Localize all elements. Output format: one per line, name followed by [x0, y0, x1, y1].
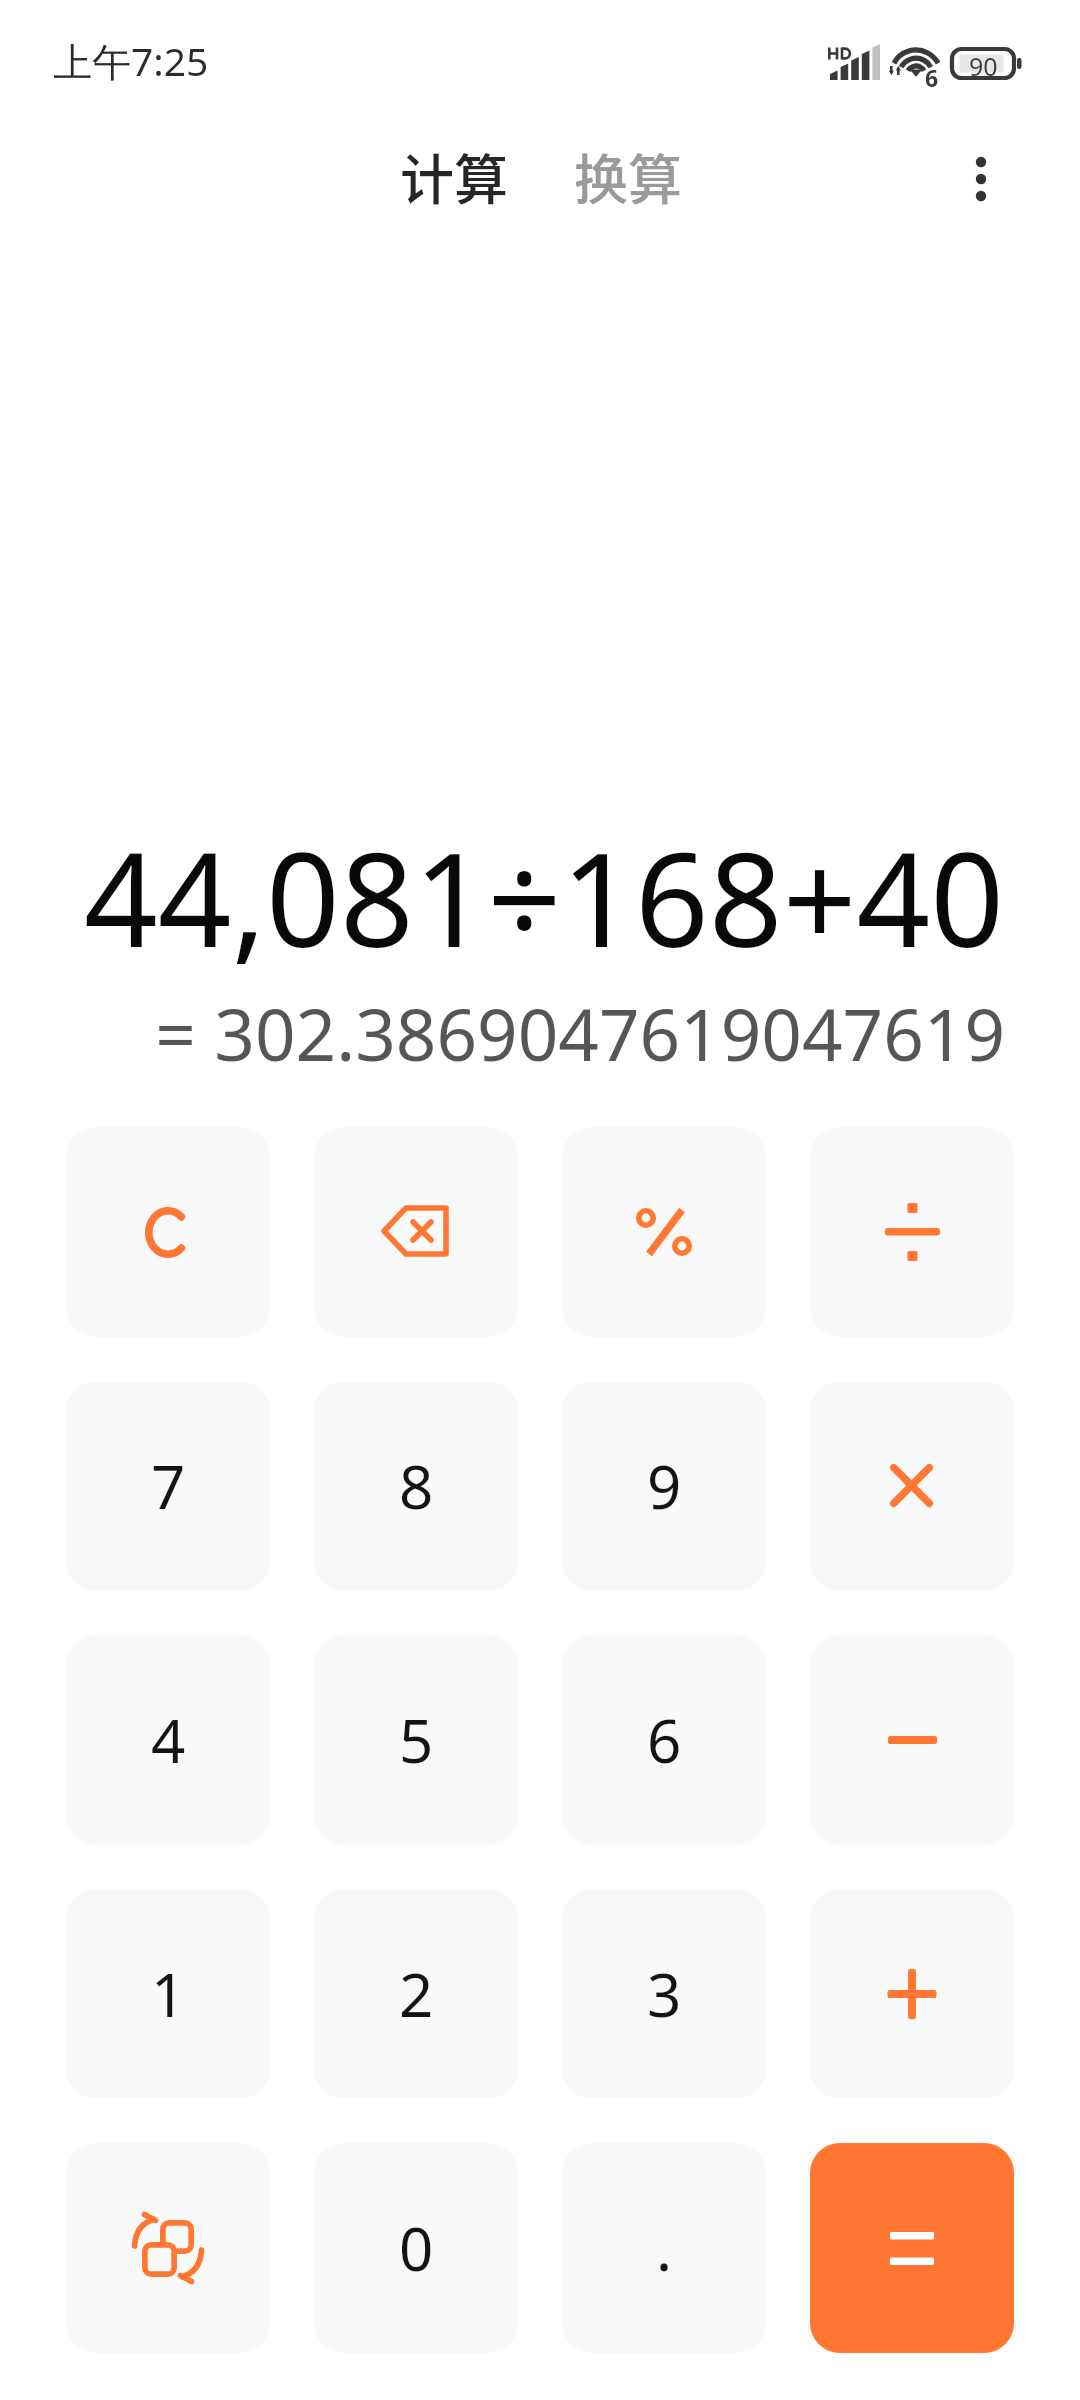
button[interactable]: 8: [314, 1381, 518, 1591]
staticText: 4: [151, 1699, 186, 1781]
button[interactable]: Clear: [66, 1127, 270, 1337]
staticText: = 302.3869047619047619: [0, 985, 1005, 1082]
staticText: 6: [925, 62, 939, 93]
button[interactable]: 6: [562, 1635, 766, 1845]
staticText: 7: [151, 1445, 186, 1527]
button[interactable]: 0: [314, 2143, 518, 2353]
staticText: 8: [399, 1445, 434, 1527]
staticText: 6: [647, 1699, 682, 1781]
button[interactable]: Divide: [810, 1127, 1014, 1337]
button[interactable]: .: [562, 2143, 766, 2353]
button[interactable]: Plus: [810, 1889, 1014, 2099]
staticText: 9: [647, 1445, 682, 1527]
button[interactable]: 5: [314, 1635, 518, 1845]
staticText: 2: [399, 1953, 434, 2035]
button[interactable]: 换算: [550, 113, 706, 239]
button[interactable]: 2: [314, 1889, 518, 2099]
staticText: 44,081÷168+40: [0, 809, 1004, 985]
staticText: 5: [399, 1699, 434, 1781]
button[interactable]: 计算: [376, 113, 532, 239]
staticText: 0: [399, 2207, 434, 2289]
button[interactable]: Multiply: [810, 1381, 1014, 1591]
staticText: .: [656, 2207, 673, 2289]
button[interactable]: 7: [66, 1381, 270, 1591]
button[interactable]: Backspace: [314, 1127, 518, 1337]
staticText: 3: [647, 1953, 682, 2035]
staticText: 1: [151, 1953, 186, 2035]
button[interactable]: Minus: [810, 1635, 1014, 1845]
button[interactable]: 9: [562, 1381, 766, 1591]
button[interactable]: 4: [66, 1635, 270, 1845]
staticText: 换算: [574, 137, 682, 215]
staticText: 上午7:25: [53, 34, 209, 87]
button[interactable]: Unit converter: [66, 2143, 270, 2353]
button[interactable]: Percent: [562, 1127, 766, 1337]
staticText: 90: [969, 49, 998, 78]
button[interactable]: 1: [66, 1889, 270, 2099]
button[interactable]: 3: [562, 1889, 766, 2099]
button[interactable]: Equals: [810, 2143, 1014, 2353]
button[interactable]: More options: [933, 131, 1029, 227]
staticText: 计算: [400, 137, 508, 215]
